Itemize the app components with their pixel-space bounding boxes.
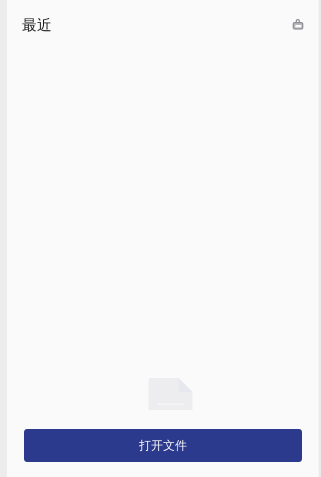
- staticText: 打开文件: [139, 438, 187, 453]
- staticText: 最近: [22, 16, 52, 34]
- button[interactable]: 打开文件: [24, 429, 302, 462]
- button[interactable]: Locker: [288, 14, 321, 36]
